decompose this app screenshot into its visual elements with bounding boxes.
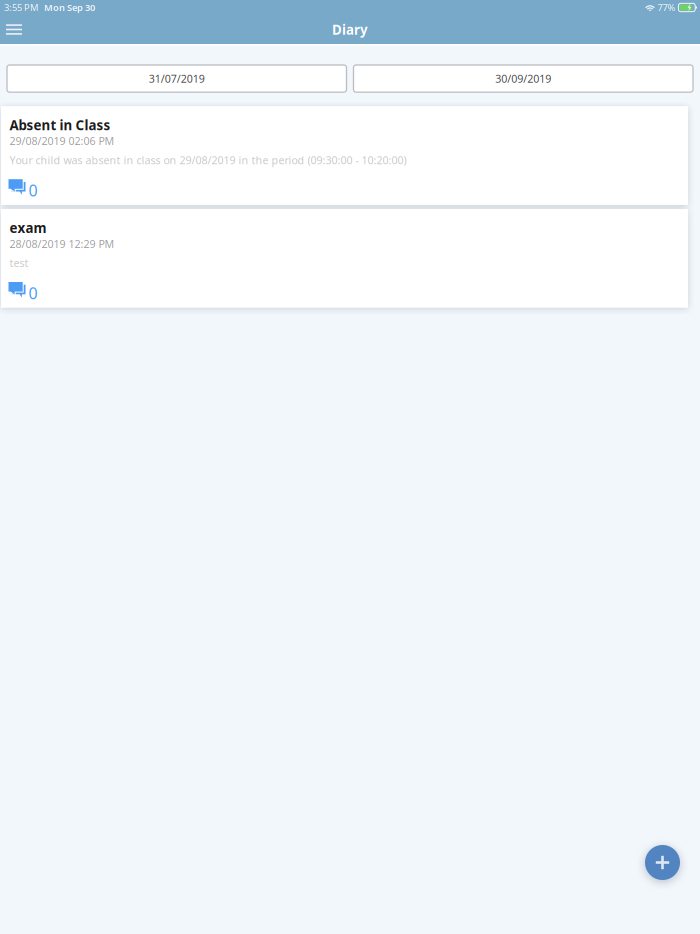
- staticText: Your child was absent in class on 29/08/…: [9, 153, 406, 167]
- button[interactable]: Add entry: [645, 845, 680, 880]
- button[interactable]: Absent in Class: [1, 106, 688, 205]
- staticText: 28/08/2019 12:29 PM: [9, 237, 114, 251]
- button[interactable]: 31/07/2019: [7, 65, 346, 92]
- button[interactable]: Menu: [0, 16, 32, 43]
- staticText: exam: [9, 219, 46, 237]
- staticText: test: [9, 256, 28, 270]
- staticText: Absent in Class: [9, 116, 110, 134]
- staticText: 31/07/2019: [149, 71, 205, 86]
- staticText: Diary: [332, 21, 368, 38]
- staticText: 3:55 PM: [4, 1, 38, 14]
- button[interactable]: 30/09/2019: [353, 65, 693, 92]
- staticText: 77%: [657, 1, 675, 14]
- staticText: 0: [28, 282, 37, 304]
- staticText: 30/09/2019: [495, 71, 551, 86]
- button[interactable]: exam: [1, 209, 688, 308]
- staticText: Mon Sep 30: [44, 1, 95, 14]
- staticText: 29/08/2019 02:06 PM: [9, 134, 114, 148]
- staticText: 0: [28, 180, 37, 201]
